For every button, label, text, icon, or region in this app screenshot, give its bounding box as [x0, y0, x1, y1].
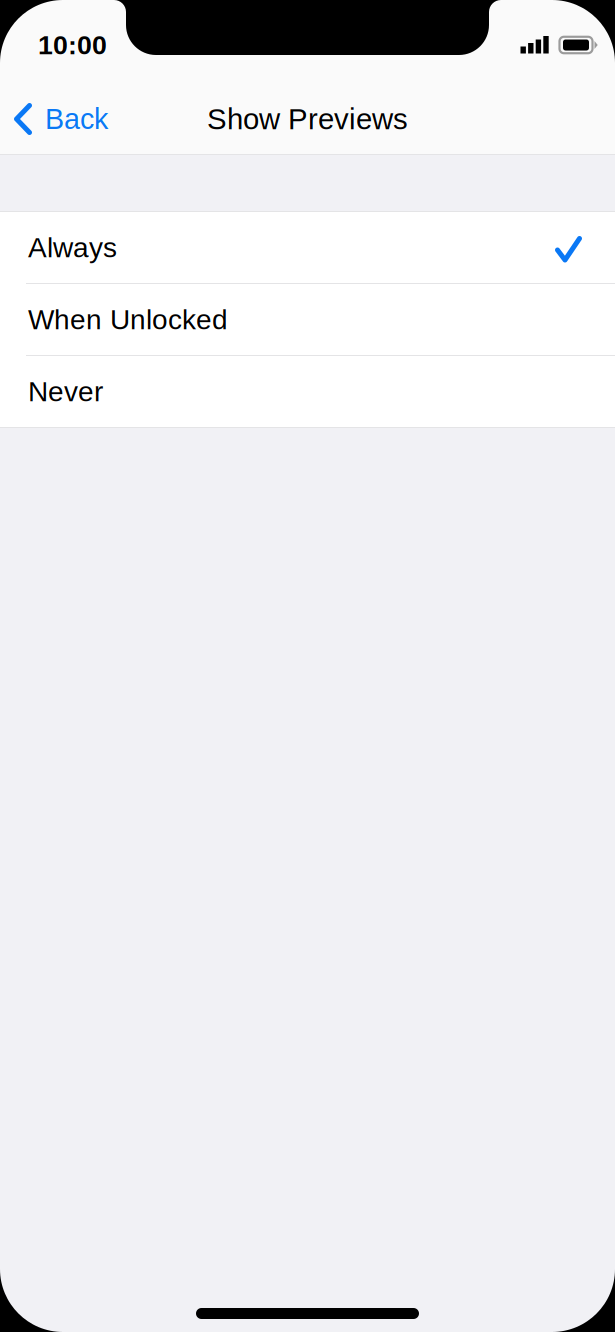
button[interactable]: Never: [0, 356, 615, 427]
staticText: Back: [45, 103, 108, 135]
staticText: 10:00: [38, 30, 107, 60]
button[interactable]: Always: [0, 212, 615, 283]
button[interactable]: Back: [0, 84, 124, 154]
staticText: Never: [28, 376, 103, 407]
staticText: Always: [28, 232, 117, 263]
staticText: When Unlocked: [28, 304, 228, 335]
staticText: Show Previews: [207, 103, 408, 135]
button[interactable]: When Unlocked: [0, 284, 615, 355]
